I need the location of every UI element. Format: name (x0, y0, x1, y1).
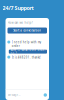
staticText: 24/7 Support (2, 4, 33, 12)
button[interactable]: Start a conversation (7, 27, 47, 33)
staticText: Message… (7, 93, 20, 97)
staticText: It is #48201, thanks! (12, 56, 41, 59)
staticText: I need help with my order (12, 40, 41, 48)
button[interactable]: Send (44, 93, 47, 97)
staticText: Sure — what is the order no.? (10, 48, 45, 55)
staticText: How can we help? (7, 21, 32, 24)
staticText: Start a conversation (13, 29, 41, 32)
